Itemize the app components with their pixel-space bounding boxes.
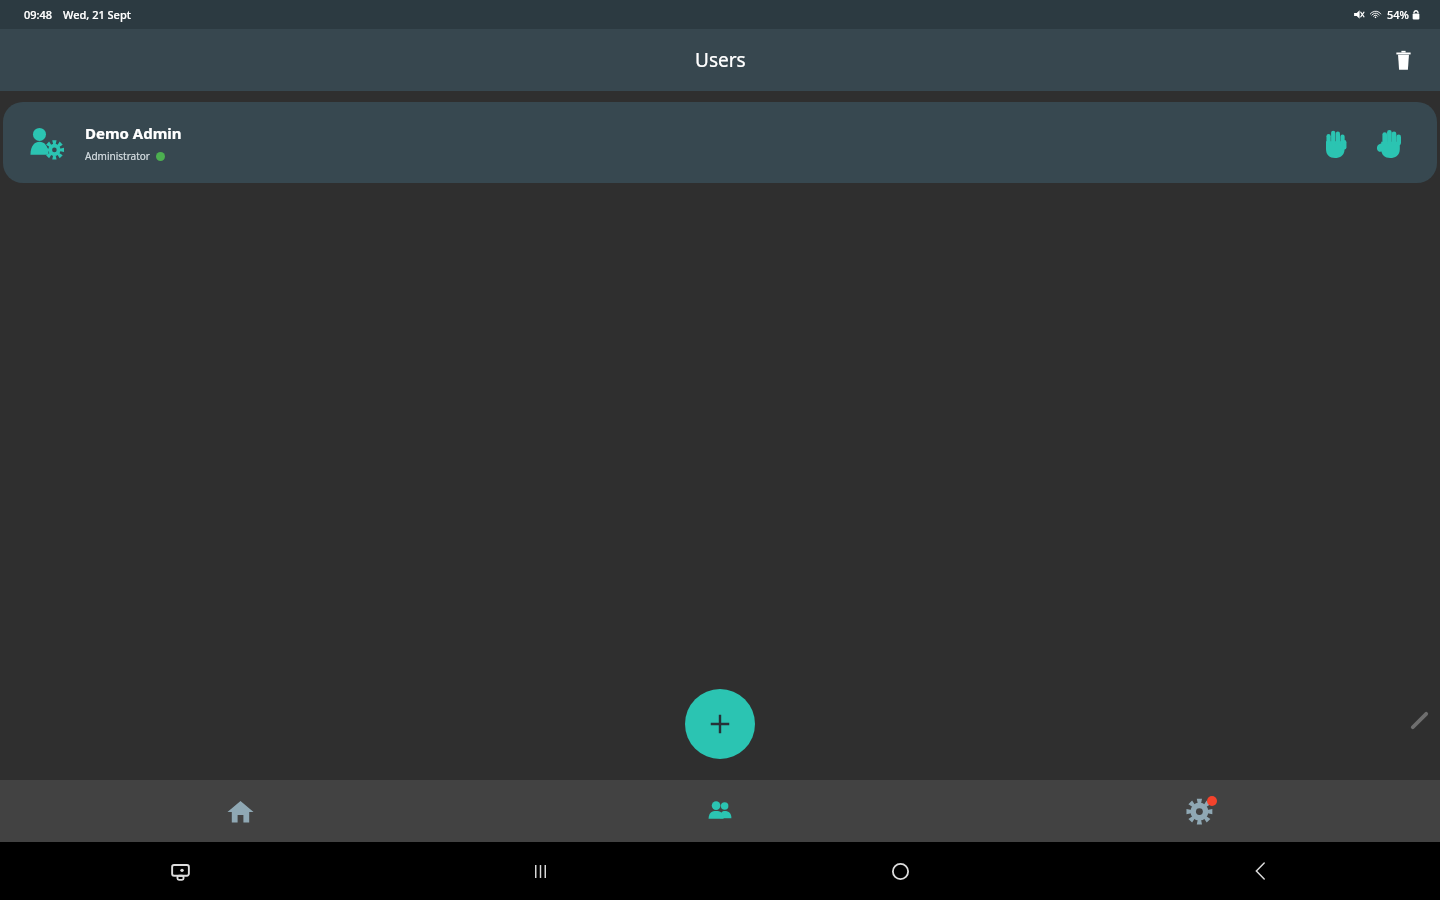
staticText: 54% (1387, 7, 1409, 22)
button[interactable]: Demo Admin (3, 102, 1437, 183)
button[interactable]: Hide keyboard (0, 842, 360, 900)
button[interactable]: Home (0, 780, 480, 842)
staticText: Demo Admin (85, 123, 182, 143)
button[interactable]: Allow user (1363, 117, 1415, 169)
button[interactable]: Delete (1380, 37, 1426, 83)
button[interactable]: Users (480, 780, 960, 842)
button[interactable]: Recent apps (360, 842, 720, 900)
staticText: Administrator (85, 149, 150, 163)
button[interactable]: Settings (960, 780, 1440, 842)
button[interactable]: Add user (685, 689, 755, 759)
button[interactable]: Block user (1309, 117, 1361, 169)
staticText: Wed, 21 Sept (63, 7, 131, 22)
staticText: Users (695, 47, 746, 73)
button[interactable]: Edit (1402, 704, 1436, 738)
staticText: 09:48 (24, 7, 53, 22)
button[interactable]: Home (720, 842, 1080, 900)
button[interactable]: Back (1080, 842, 1440, 900)
